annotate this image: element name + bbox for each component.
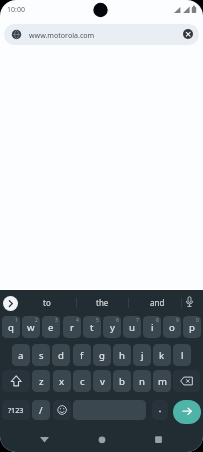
button[interactable]: z: [32, 370, 50, 392]
staticText: k: [159, 349, 165, 362]
staticText: n: [139, 375, 145, 388]
button[interactable]: k: [153, 344, 171, 366]
staticText: q: [8, 321, 14, 334]
staticText: t: [90, 321, 94, 334]
staticText: 0: [196, 317, 199, 324]
staticText: and: [150, 297, 165, 308]
button[interactable]: [173, 370, 200, 392]
staticText: r: [70, 321, 74, 334]
staticText: 10:00: [7, 5, 25, 15]
staticText: 9: [176, 317, 179, 324]
button[interactable]: [2, 370, 30, 392]
staticText: o: [169, 321, 175, 334]
staticText: l: [181, 349, 184, 362]
button[interactable]: [3, 296, 18, 311]
button[interactable]: o: [163, 316, 181, 338]
staticText: to: [43, 297, 51, 308]
button[interactable]: s: [32, 344, 50, 366]
button[interactable]: to: [27, 291, 67, 313]
staticText: j: [141, 349, 144, 362]
button[interactable]: [182, 295, 197, 310]
staticText: z: [39, 375, 44, 388]
button[interactable]: a: [12, 344, 30, 366]
button[interactable]: /: [32, 400, 50, 420]
button[interactable]: www.motorola.com: [4, 24, 199, 45]
button[interactable]: q: [2, 316, 20, 338]
button[interactable]: f: [73, 344, 91, 366]
button[interactable]: g: [93, 344, 111, 366]
staticText: 2: [35, 317, 38, 324]
staticText: g: [99, 349, 105, 362]
staticText: v: [100, 375, 105, 388]
staticText: w: [27, 321, 35, 334]
button[interactable]: v: [93, 370, 111, 392]
staticText: 7: [136, 317, 139, 324]
staticText: 8: [156, 317, 159, 324]
button[interactable]: p: [183, 316, 201, 338]
button[interactable]: [53, 400, 71, 420]
staticText: d: [58, 349, 64, 362]
staticText: a: [18, 349, 24, 362]
button[interactable]: u: [123, 316, 141, 338]
staticText: www.motorola.com: [29, 30, 95, 40]
staticText: 6: [116, 317, 119, 324]
staticText: p: [189, 321, 195, 334]
button[interactable]: [173, 400, 201, 424]
button[interactable]: [183, 29, 193, 39]
button[interactable]: m: [153, 370, 171, 392]
button[interactable]: n: [133, 370, 151, 392]
staticText: h: [119, 349, 125, 362]
button[interactable]: [34, 430, 55, 448]
staticText: u: [129, 321, 135, 334]
button[interactable]: t: [83, 316, 101, 338]
button[interactable]: [92, 430, 112, 448]
staticText: i: [151, 321, 154, 334]
button[interactable]: d: [52, 344, 70, 366]
button[interactable]: x: [53, 370, 71, 392]
button[interactable]: i: [143, 316, 161, 338]
button[interactable]: [149, 430, 169, 448]
staticText: 5: [96, 317, 99, 324]
staticText: 4: [76, 317, 79, 324]
button[interactable]: and: [137, 291, 177, 313]
staticText: c: [80, 375, 85, 388]
button[interactable]: r: [63, 316, 81, 338]
button[interactable]: the: [82, 291, 122, 313]
button[interactable]: w: [22, 316, 40, 338]
staticText: the: [96, 297, 109, 308]
button[interactable]: j: [133, 344, 151, 366]
button[interactable]: b: [113, 370, 131, 392]
staticText: 3: [55, 317, 58, 324]
staticText: 1: [15, 317, 18, 324]
staticText: /: [39, 404, 43, 417]
staticText: ?123: [8, 405, 24, 415]
staticText: x: [59, 375, 65, 388]
staticText: s: [39, 349, 44, 362]
button[interactable]: e: [42, 316, 60, 338]
staticText: b: [119, 375, 125, 388]
staticText: f: [80, 349, 84, 362]
staticText: y: [110, 321, 115, 334]
staticText: e: [48, 321, 54, 334]
button[interactable]: c: [73, 370, 91, 392]
button[interactable]: [152, 400, 168, 420]
button[interactable]: h: [113, 344, 131, 366]
staticText: m: [158, 375, 167, 388]
button[interactable]: l: [173, 344, 191, 366]
button[interactable]: y: [103, 316, 121, 338]
button[interactable]: ?123: [2, 400, 30, 420]
